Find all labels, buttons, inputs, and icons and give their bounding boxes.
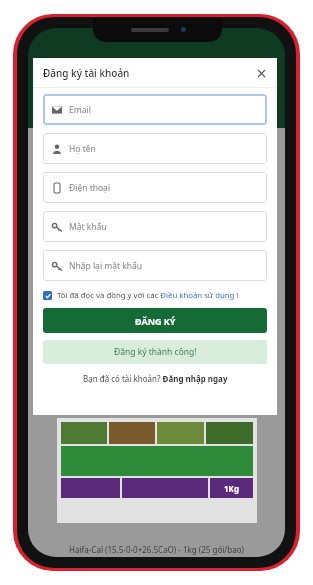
button[interactable]: Nhập lại mật khẩu [43, 250, 267, 281]
staticText: Đăng ký thành công! [114, 346, 197, 358]
button[interactable]: Close [253, 65, 269, 81]
button[interactable]: Điện thoại [43, 172, 267, 203]
staticText: Email [69, 104, 91, 116]
staticText: Haifa-Cal (15.5-0-0+26.5CaO) - 1kg (25 g… [28, 544, 285, 555]
staticText: Nhập lại mật khẩu [69, 260, 143, 272]
button[interactable]: ĐĂNG KÝ [43, 308, 267, 333]
staticText: 1Kg [224, 483, 239, 494]
button[interactable]: Email [43, 94, 267, 125]
button[interactable]: Mật khẩu [43, 211, 267, 242]
staticText: Tôi đã đọc và đồng ý với các Điều khoản … [57, 290, 239, 301]
button[interactable]: Tôi đã đọc và đồng ý với các Điều khoản … [43, 290, 267, 301]
staticText: Mật khẩu [69, 221, 107, 233]
button[interactable]: Họ tên [43, 133, 267, 164]
staticText: Đăng ký tài khoản [43, 66, 130, 80]
staticText: Điện thoại [69, 182, 111, 194]
staticText: Họ tên [69, 143, 96, 155]
staticText: Bạn đã có tài khoản? Đăng nhập ngay [83, 373, 228, 384]
staticText: ĐĂNG KÝ [135, 315, 176, 327]
button[interactable]: Bạn đã có tài khoản? Đăng nhập ngay [43, 373, 267, 384]
